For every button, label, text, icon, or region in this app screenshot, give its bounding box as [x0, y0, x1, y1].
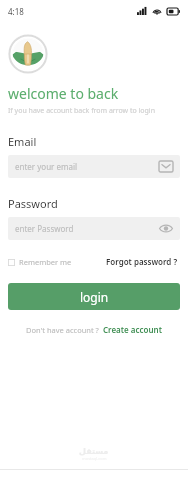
button[interactable]: login — [8, 283, 180, 310]
button[interactable]: Forgot password ? — [106, 254, 178, 269]
staticText: enter your email — [15, 161, 78, 172]
staticText: mostaql.com — [82, 456, 107, 461]
staticText: login — [80, 289, 109, 305]
button[interactable]: enter Password — [8, 217, 180, 240]
staticText: Forgot password ? — [106, 256, 178, 267]
other: Email — [159, 161, 173, 172]
other: Show password — [159, 223, 173, 234]
button[interactable]: enter your email — [8, 155, 180, 178]
staticText: Create account — [103, 324, 162, 335]
button[interactable]: Create account — [103, 322, 162, 337]
button[interactable]: Remember me — [8, 255, 72, 269]
staticText: welcome to back — [8, 84, 119, 103]
staticText: Email — [8, 134, 37, 149]
staticText: enter Password — [15, 223, 74, 234]
staticText: Password — [8, 196, 58, 211]
staticText: 4:18 — [8, 6, 24, 17]
button[interactable]: App logo — [8, 34, 48, 74]
staticText: Remember me — [19, 257, 72, 267]
staticText: Don't have account ? — [26, 325, 99, 335]
staticText: If you have account back from arrow to l… — [8, 106, 155, 116]
staticText: مستقل — [79, 447, 109, 456]
